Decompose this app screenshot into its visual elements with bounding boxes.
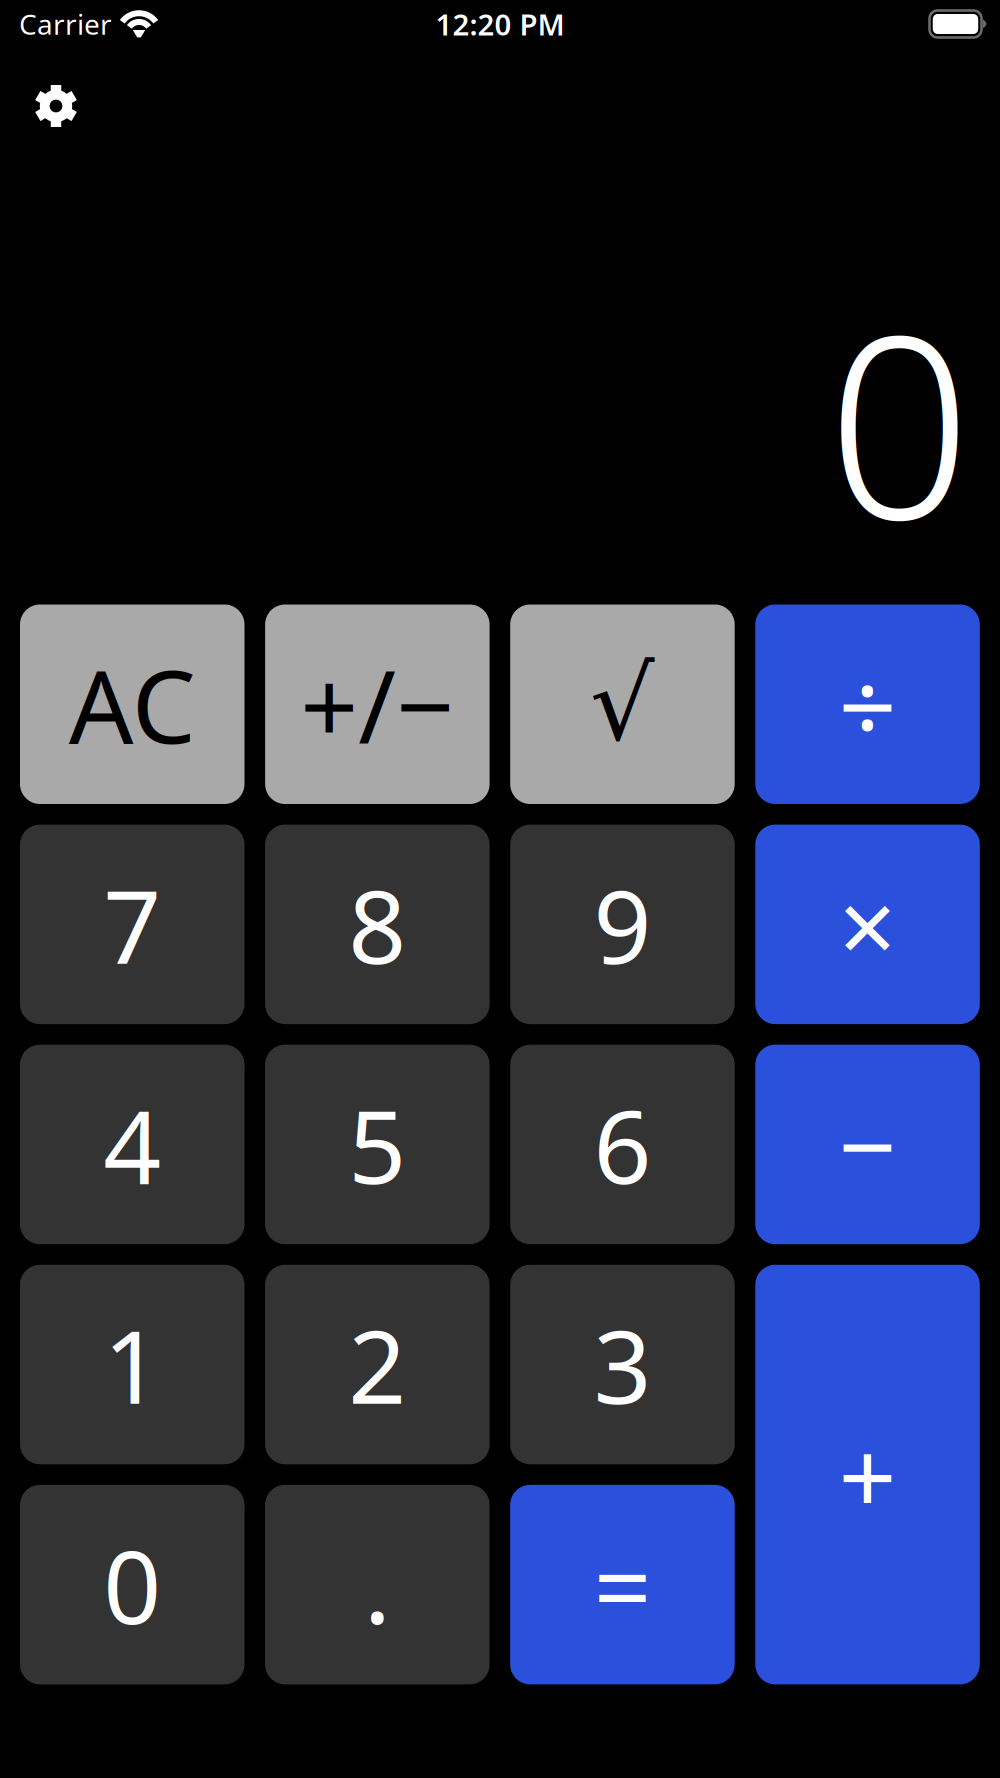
button[interactable]: 3 — [510, 1265, 735, 1464]
staticText: √ — [590, 647, 655, 762]
button[interactable]: 4 — [20, 1045, 244, 1244]
staticText: 3 — [593, 1297, 651, 1432]
staticText: = — [593, 1517, 651, 1652]
staticText: . — [364, 1517, 391, 1652]
button[interactable]: Settings — [19, 69, 93, 143]
staticText: + — [839, 1407, 897, 1542]
staticText: 0 — [103, 1517, 161, 1652]
button[interactable]: 9 — [510, 825, 735, 1024]
staticText: 7 — [103, 857, 161, 992]
button[interactable]: × — [755, 825, 980, 1024]
staticText: 6 — [593, 1077, 651, 1212]
button[interactable]: + — [755, 1265, 980, 1684]
staticText: 1 — [103, 1297, 161, 1432]
staticText: 12:20 PM — [435, 4, 564, 43]
button[interactable]: = — [510, 1485, 735, 1684]
staticText: 9 — [593, 857, 651, 992]
staticText: Carrier — [19, 5, 112, 43]
staticText: 8 — [348, 857, 406, 992]
button[interactable]: 2 — [265, 1265, 490, 1464]
button[interactable]: 0 — [20, 1485, 244, 1684]
staticText: 0 — [827, 252, 972, 588]
button[interactable]: . — [265, 1485, 490, 1684]
staticText: − — [839, 1077, 897, 1212]
staticText: × — [839, 857, 897, 992]
button[interactable]: 1 — [20, 1265, 244, 1464]
button[interactable]: ÷ — [755, 604, 980, 804]
button[interactable]: 5 — [265, 1045, 490, 1244]
button[interactable]: √ — [510, 604, 735, 804]
button[interactable]: − — [755, 1045, 980, 1244]
staticText: +/− — [300, 637, 454, 772]
staticText: 4 — [103, 1077, 161, 1212]
staticText: ÷ — [839, 637, 897, 772]
button[interactable]: AC — [20, 604, 244, 804]
staticText: 2 — [348, 1297, 406, 1432]
button[interactable]: 8 — [265, 825, 490, 1024]
button[interactable]: 7 — [20, 825, 244, 1024]
staticText: AC — [69, 637, 196, 772]
button[interactable]: 6 — [510, 1045, 735, 1244]
button[interactable]: +/− — [265, 604, 490, 804]
staticText: 5 — [348, 1077, 406, 1212]
